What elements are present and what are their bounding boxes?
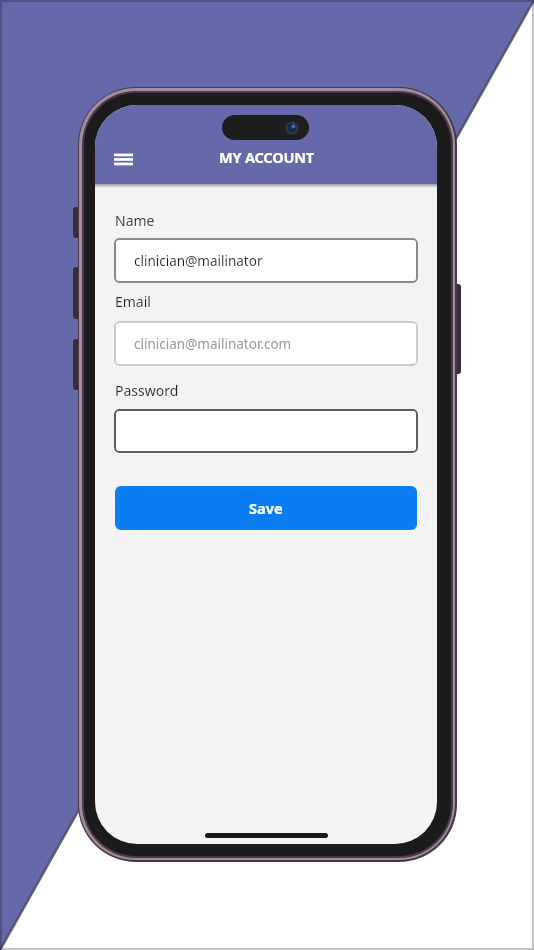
staticText: MY ACCOUNT — [219, 147, 314, 167]
staticText: Save — [249, 498, 283, 518]
staticText: Email — [115, 292, 151, 311]
button[interactable] — [104, 141, 142, 175]
staticText: clinician@mailinator.com — [134, 335, 292, 353]
button[interactable]: clinician@mailinator — [114, 238, 418, 283]
button[interactable]: clinician@mailinator.com — [114, 321, 418, 366]
button[interactable]: Save — [115, 486, 417, 530]
button[interactable] — [114, 409, 418, 453]
staticText: Name — [115, 211, 155, 230]
staticText: Password — [115, 381, 179, 400]
staticText: clinician@mailinator — [134, 252, 263, 270]
